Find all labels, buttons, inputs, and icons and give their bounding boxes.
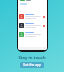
staticText: Stay in touch: [18, 55, 46, 61]
button[interactable]: Thumbnail: [20, 0, 25, 1]
button[interactable]: [18, 21, 47, 30]
button[interactable]: Thumbnail: [26, 0, 31, 1]
button[interactable]: [18, 30, 47, 39]
button[interactable]: Get the app: [20, 62, 44, 68]
button[interactable]: [18, 12, 47, 21]
staticText: Get the app: [23, 63, 41, 67]
